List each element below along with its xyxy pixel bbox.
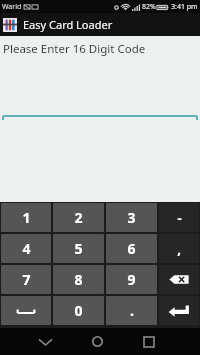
staticText: 3:41 pm — [171, 2, 198, 12]
staticText: Please Enter 16 Digit Code — [3, 41, 146, 57]
button[interactable]: 9 — [106, 265, 157, 294]
button[interactable]: Recent apps — [135, 328, 163, 355]
staticText: , — [177, 240, 181, 258]
button[interactable]: 8 — [53, 265, 104, 294]
staticText: . — [130, 301, 134, 320]
button[interactable]: . — [106, 296, 157, 325]
staticText: Warid — [2, 2, 22, 12]
staticText: 4 — [22, 239, 31, 258]
button[interactable]: 5 — [53, 234, 104, 263]
button[interactable]: - — [159, 203, 199, 232]
button[interactable]: 3 — [106, 203, 157, 232]
staticText: 82% — [142, 2, 156, 12]
staticText: 0 — [74, 301, 83, 320]
staticText: 9 — [127, 270, 136, 289]
staticText: 7 — [22, 270, 31, 289]
button[interactable]: Backspace — [159, 265, 199, 294]
staticText: 6 — [127, 239, 136, 258]
button[interactable]: 7 — [1, 265, 51, 294]
button[interactable]: Hide keyboard — [31, 328, 59, 355]
button[interactable]: 1 — [1, 203, 51, 232]
button[interactable]: 4 — [1, 234, 51, 263]
staticText: 2 — [74, 208, 83, 227]
button[interactable]: 2 — [53, 203, 104, 232]
button[interactable]: Home — [83, 328, 111, 355]
staticText: - — [177, 209, 182, 227]
button[interactable]: 6 — [106, 234, 157, 263]
staticText: 8 — [74, 270, 83, 289]
staticText: 5 — [74, 239, 83, 258]
staticText: 1 — [22, 208, 31, 227]
staticText: Easy Card Loader — [23, 17, 113, 32]
button[interactable]: Enter — [159, 296, 199, 325]
button[interactable]: 0 — [53, 296, 104, 325]
button[interactable]: , — [159, 234, 199, 263]
button[interactable]: Space — [1, 296, 51, 325]
staticText: 3 — [127, 208, 136, 227]
